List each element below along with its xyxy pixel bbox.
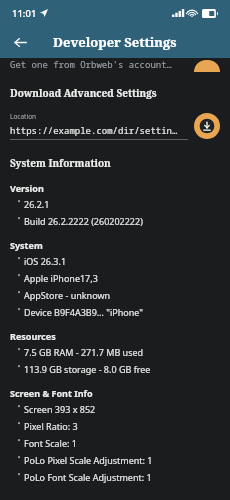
- staticText: Developer Settings: [53, 33, 177, 51]
- button[interactable]: Download: [194, 113, 220, 139]
- staticText: Font Scale: 1: [24, 437, 77, 449]
- staticText: Pixel Ratio: 3: [24, 420, 78, 432]
- staticText: Device B9F4A3B9… "iPhone": [24, 306, 143, 318]
- staticText: 11:01: [12, 7, 37, 20]
- staticText: PoLo Pixel Scale Adjustment: 1: [24, 454, 153, 466]
- staticText: Build 26.2.2222 (260202222): [24, 215, 143, 227]
- staticText: System Information: [10, 156, 111, 170]
- staticText: https://example.com/dir/settin…: [10, 124, 178, 136]
- staticText: 7.5 GB RAM - 271.7 MB used: [24, 346, 144, 358]
- button[interactable]: Location: [10, 112, 188, 140]
- staticText: iOS 26.3.1: [24, 255, 67, 267]
- staticText: Screen & Font Info: [10, 387, 93, 399]
- staticText: Version: [10, 182, 44, 194]
- staticText: Resources: [10, 330, 56, 342]
- staticText: System: [10, 239, 43, 251]
- staticText: 113.9 GB storage - 8.0 GB free: [24, 363, 151, 375]
- staticText: 26.2.1: [24, 198, 50, 210]
- staticText: Download Advanced Settings: [10, 86, 157, 100]
- staticText: PoLo Font Scale Adjustment: 1: [24, 471, 152, 483]
- staticText: Apple iPhone17,3: [24, 272, 98, 284]
- button[interactable]: Get one from Orbweb's account…: [10, 58, 220, 72]
- staticText: Screen 393 x 852: [24, 403, 96, 415]
- button[interactable]: Back: [8, 30, 32, 54]
- staticText: Location: [10, 112, 37, 121]
- staticText: Get one from Orbweb's account…: [10, 58, 173, 70]
- staticText: AppStore - unknown: [24, 289, 111, 301]
